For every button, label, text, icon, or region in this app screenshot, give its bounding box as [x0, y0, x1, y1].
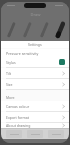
staticText: Tilt: [6, 71, 62, 76]
staticText: More: [6, 95, 15, 100]
staticText: Canvas colour: [6, 104, 62, 109]
staticText: Draw: [30, 12, 41, 17]
button[interactable]: About drawing: [1, 123, 69, 128]
button[interactable]: Stylus: [1, 57, 69, 67]
button[interactable]: Tilt: [1, 68, 69, 78]
button[interactable]: Profile: [48, 130, 64, 138]
button[interactable]: Enabled: [59, 59, 65, 65]
button[interactable]: Size: [1, 79, 69, 89]
staticText: Settings: [28, 42, 42, 47]
button[interactable]: Marker: [39, 22, 50, 37]
staticText: Size: [6, 82, 62, 87]
button[interactable]: Export format: [1, 112, 69, 122]
button[interactable]: Home: [6, 130, 22, 138]
staticText: About drawing: [6, 123, 62, 128]
button[interactable]: Brush: [55, 22, 66, 37]
staticText: Stylus: [6, 60, 59, 65]
button[interactable]: Pen: [22, 22, 33, 37]
button[interactable]: Canvas colour: [1, 101, 69, 111]
button[interactable]: Pencil: [6, 22, 17, 37]
button[interactable]: Draw: [27, 130, 43, 138]
staticText: Pressure sensitivity: [6, 51, 39, 56]
staticText: Export format: [6, 115, 62, 120]
